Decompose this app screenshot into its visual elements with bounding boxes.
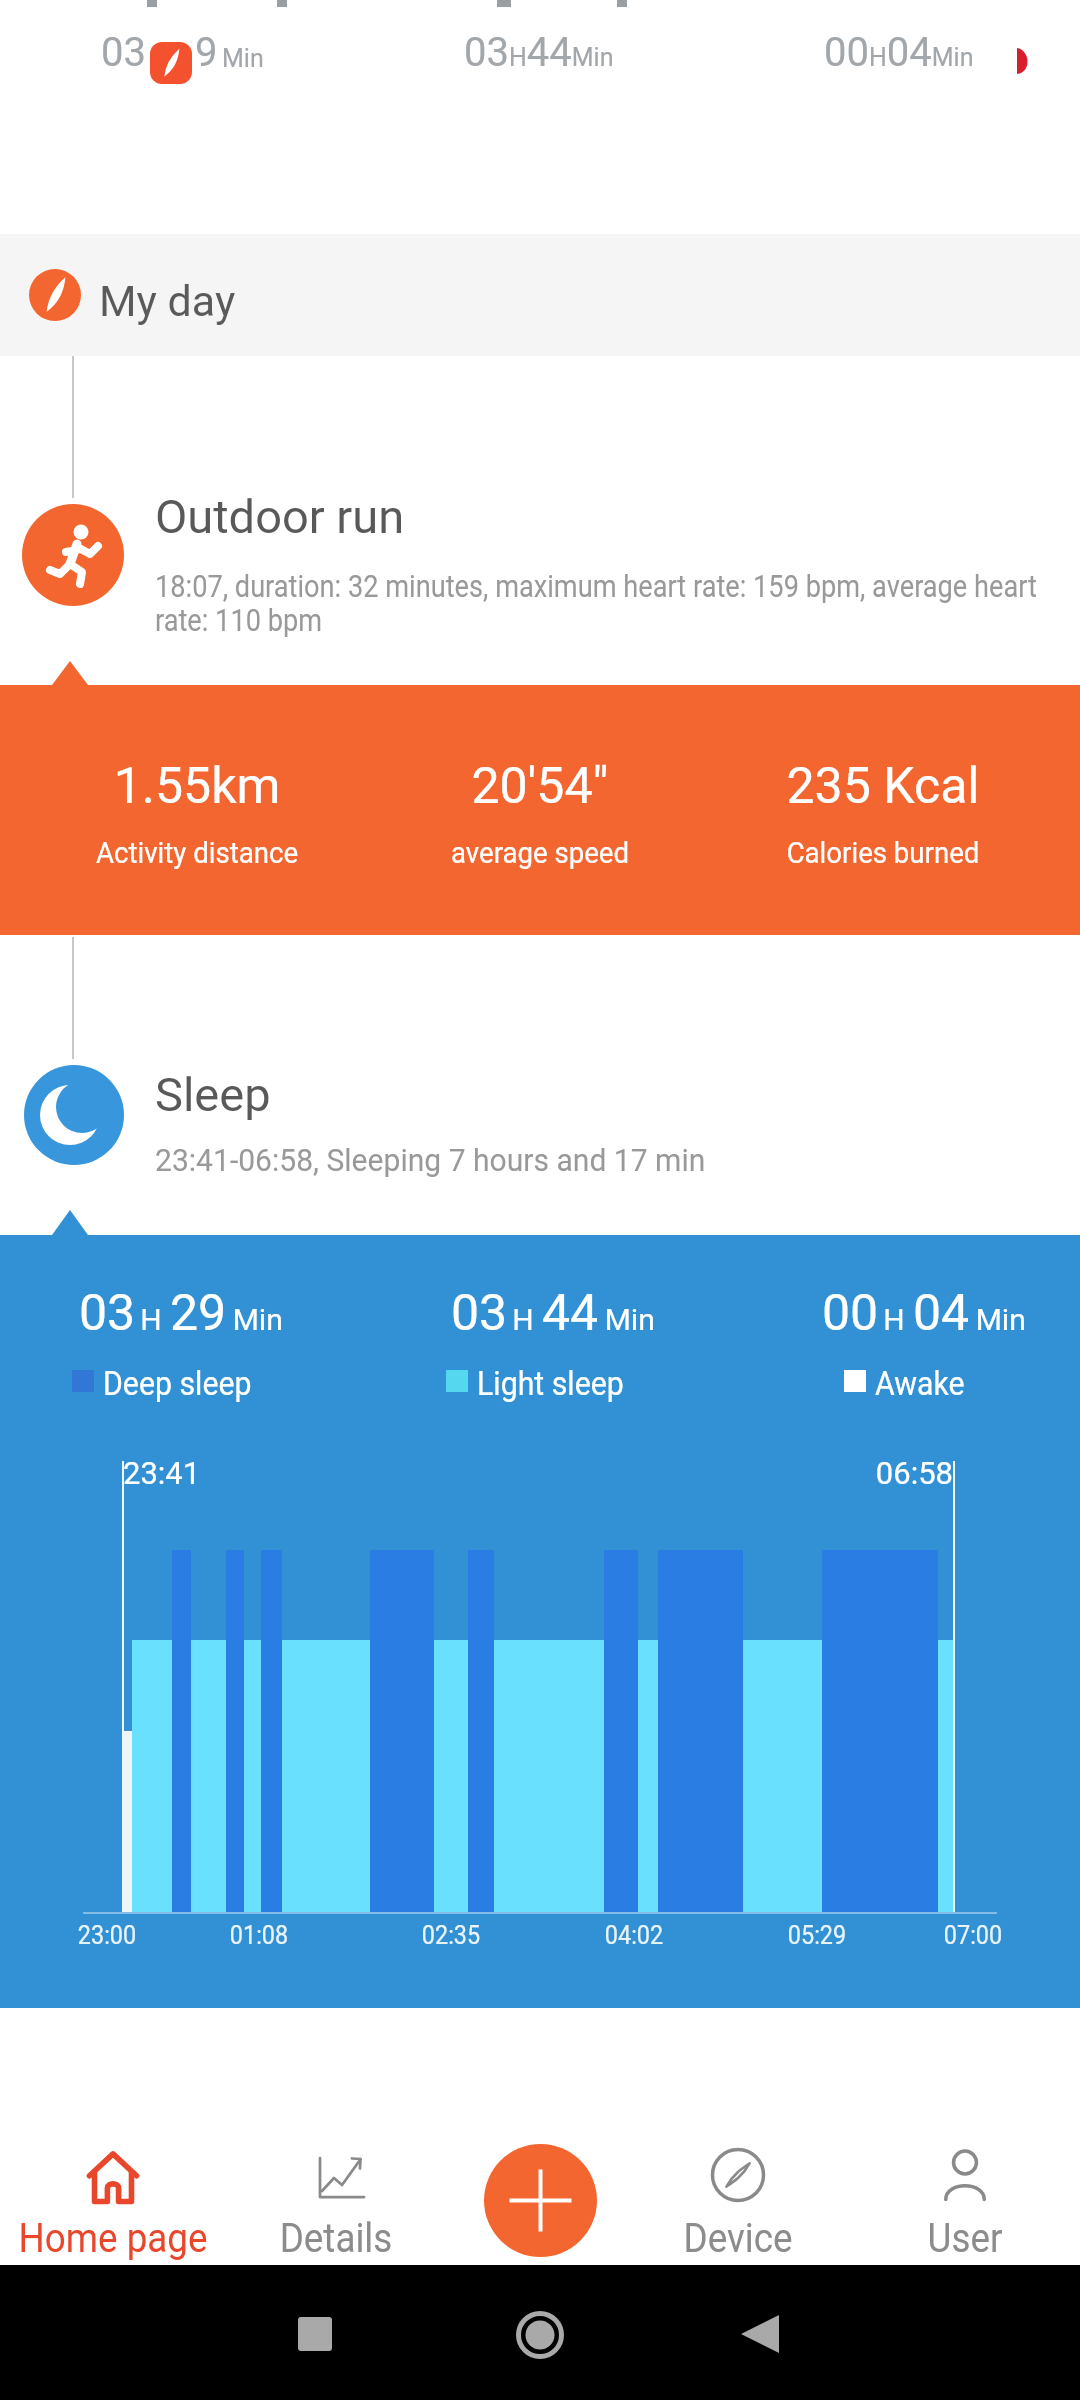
button[interactable]: Device xyxy=(638,2138,838,2265)
staticText: 03H44Min xyxy=(464,29,614,76)
staticText: Activity distance xyxy=(41,835,353,870)
staticText: 235 Kcal xyxy=(713,757,1053,816)
staticText: Deep sleep xyxy=(103,1363,252,1403)
button[interactable]: Outdoor run xyxy=(140,480,1065,660)
staticText: 1.55km xyxy=(27,757,367,816)
staticText: 07:00 xyxy=(919,1920,1027,1950)
button[interactable] xyxy=(516,2311,564,2359)
staticText: 20'54" xyxy=(370,757,710,816)
staticText: Outdoor run xyxy=(155,489,405,544)
staticText: 03 H 44 Min xyxy=(451,1284,655,1343)
staticText: rate: 110 bpm xyxy=(155,602,322,638)
button[interactable]: Details xyxy=(236,2138,436,2265)
staticText: average speed xyxy=(384,835,696,870)
staticText: 04:02 xyxy=(580,1920,688,1950)
button[interactable] xyxy=(298,2317,332,2351)
staticText: Home page xyxy=(9,2215,217,2262)
button[interactable] xyxy=(741,2315,779,2353)
staticText: 03 xyxy=(101,29,146,76)
button[interactable]: Home page xyxy=(0,2138,226,2265)
button[interactable]: Sleep xyxy=(140,1058,1065,1208)
staticText: 00 H 04 Min xyxy=(822,1284,1026,1343)
staticText: Calories burned xyxy=(727,835,1039,870)
staticText: Min xyxy=(222,44,264,73)
staticText: 23:41 xyxy=(123,1455,201,1491)
staticText: Sleep xyxy=(155,1067,271,1122)
staticText: 18:07, duration: 32 minutes, maximum hea… xyxy=(155,568,1037,604)
staticText: User xyxy=(873,2215,1057,2262)
staticText: Details xyxy=(244,2215,428,2262)
staticText: Device xyxy=(646,2215,830,2262)
button[interactable]: My day xyxy=(0,234,1080,356)
staticText: 9 xyxy=(195,29,218,76)
staticText: 06:58 xyxy=(843,1455,953,1491)
staticText: 23:00 xyxy=(53,1920,161,1950)
button[interactable]: User xyxy=(865,2138,1065,2265)
staticText: 23:41-06:58, Sleeping 7 hours and 17 min xyxy=(155,1142,706,1178)
staticText: 01:08 xyxy=(205,1920,313,1950)
staticText: 03 H 29 Min xyxy=(79,1284,283,1343)
staticText: Light sleep xyxy=(477,1363,624,1403)
staticText: My day xyxy=(99,276,236,326)
button[interactable]: 03 H 29 Min xyxy=(0,1235,1080,2008)
staticText: Awake xyxy=(875,1363,965,1403)
staticText: 02:35 xyxy=(397,1920,505,1950)
staticText: 05:29 xyxy=(763,1920,871,1950)
button[interactable] xyxy=(484,2144,597,2257)
button[interactable]: 1.55km xyxy=(0,685,1080,935)
staticText: 00H04Min xyxy=(824,29,974,76)
